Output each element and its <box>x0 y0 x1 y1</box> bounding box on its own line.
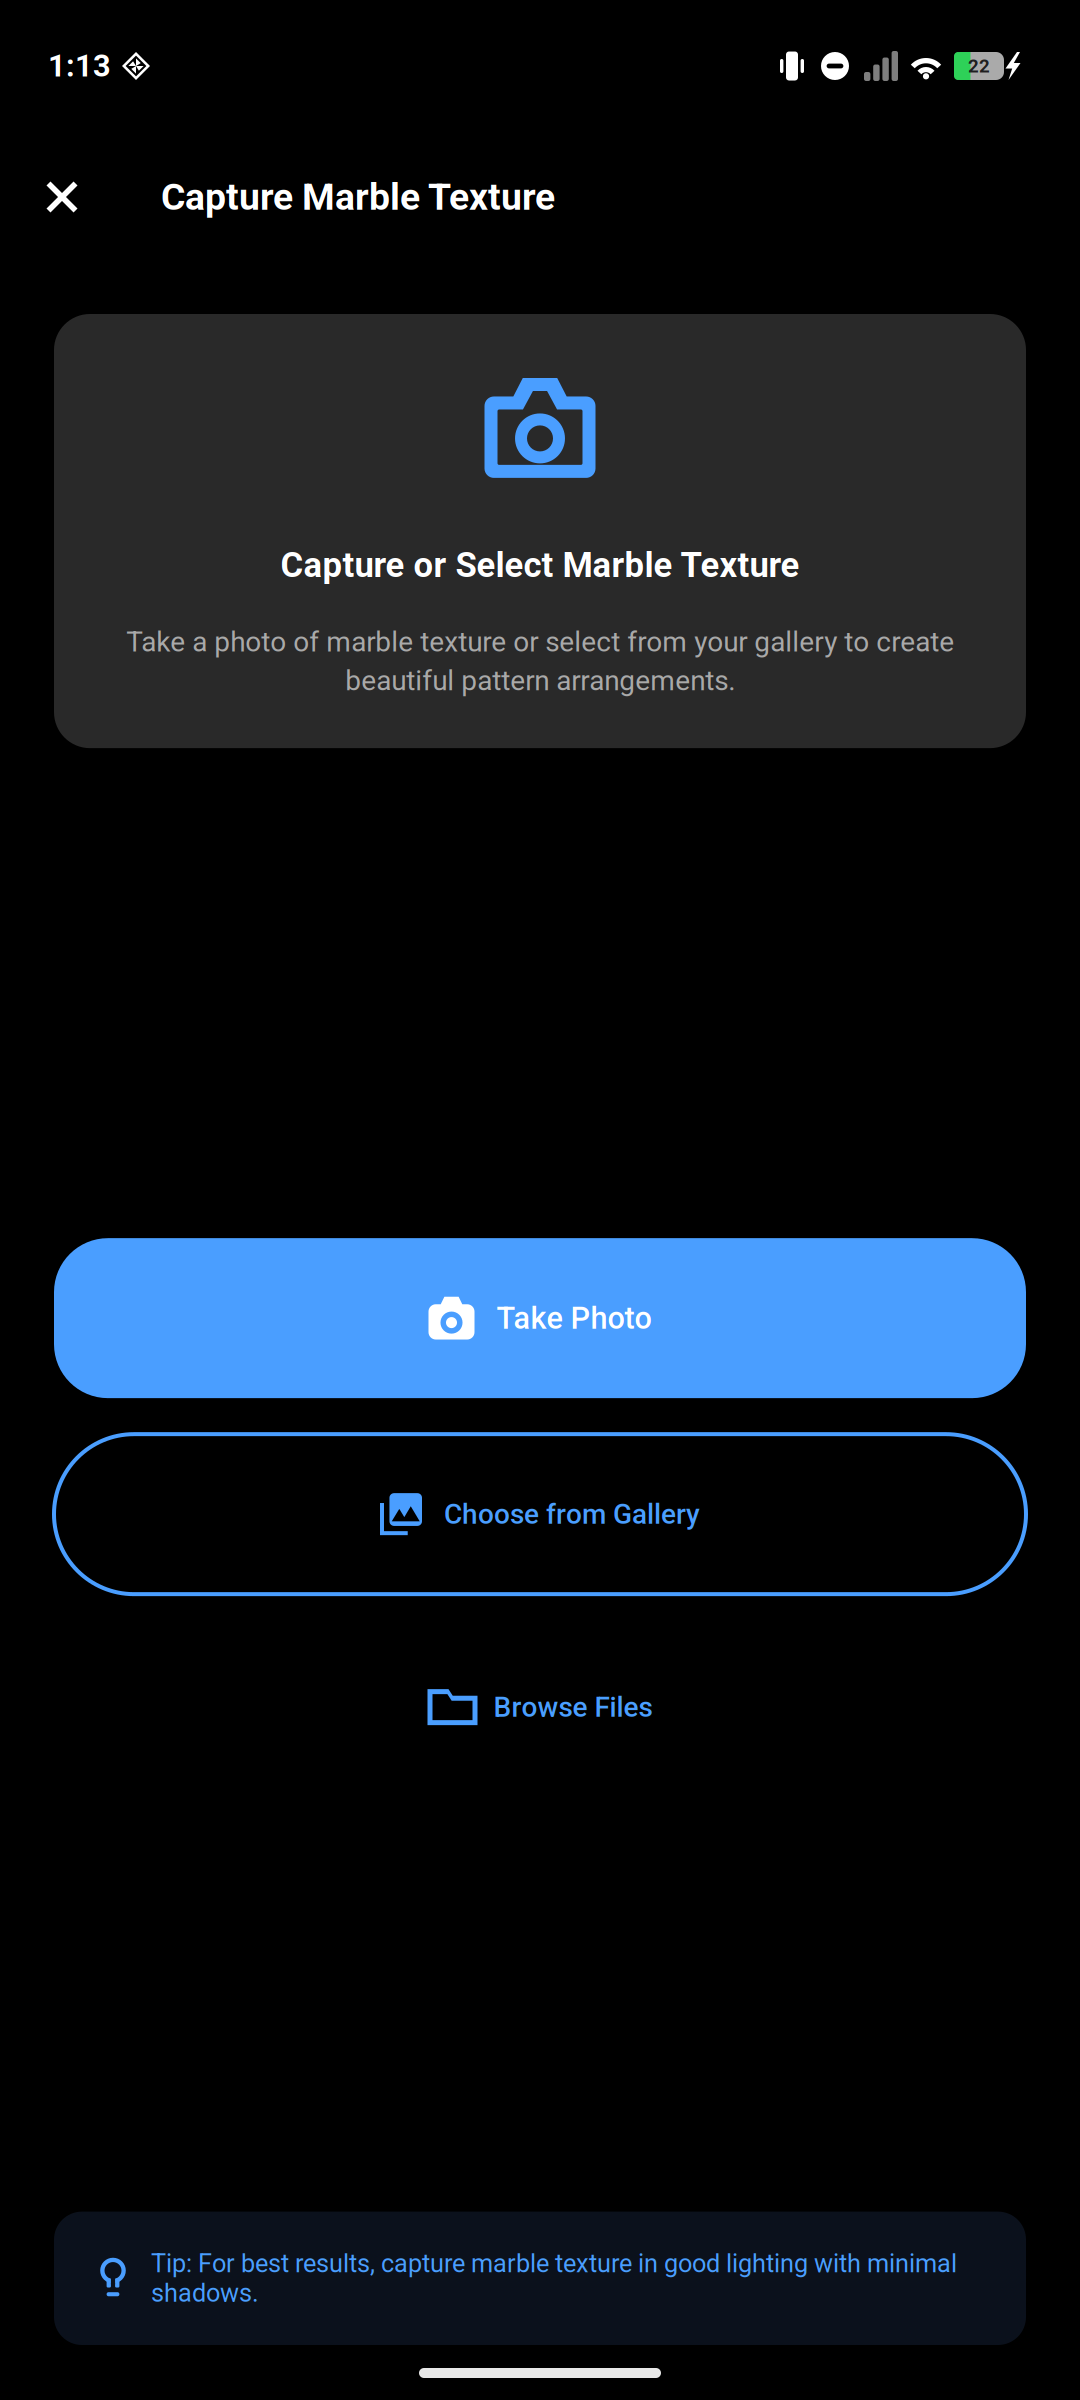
staticText: Capture Marble Texture <box>161 175 555 219</box>
staticText: Take a photo of marble texture or select… <box>126 625 954 697</box>
button[interactable]: Close <box>23 158 101 236</box>
staticText: Choose from Gallery <box>444 1498 700 1530</box>
staticText: 22 <box>968 55 990 77</box>
staticText: Capture or Select Marble Texture <box>280 545 799 585</box>
staticText: 1:13 <box>48 48 111 84</box>
staticText: Browse Files <box>493 1691 652 1723</box>
staticText: Take Photo <box>496 1300 651 1336</box>
button[interactable]: Choose from Gallery <box>54 1434 1026 1594</box>
staticText: Tip: For best results, capture marble te… <box>151 2249 957 2308</box>
button[interactable]: Take Photo <box>54 1238 1026 1398</box>
button[interactable]: Browse Files <box>0 1662 1080 1752</box>
